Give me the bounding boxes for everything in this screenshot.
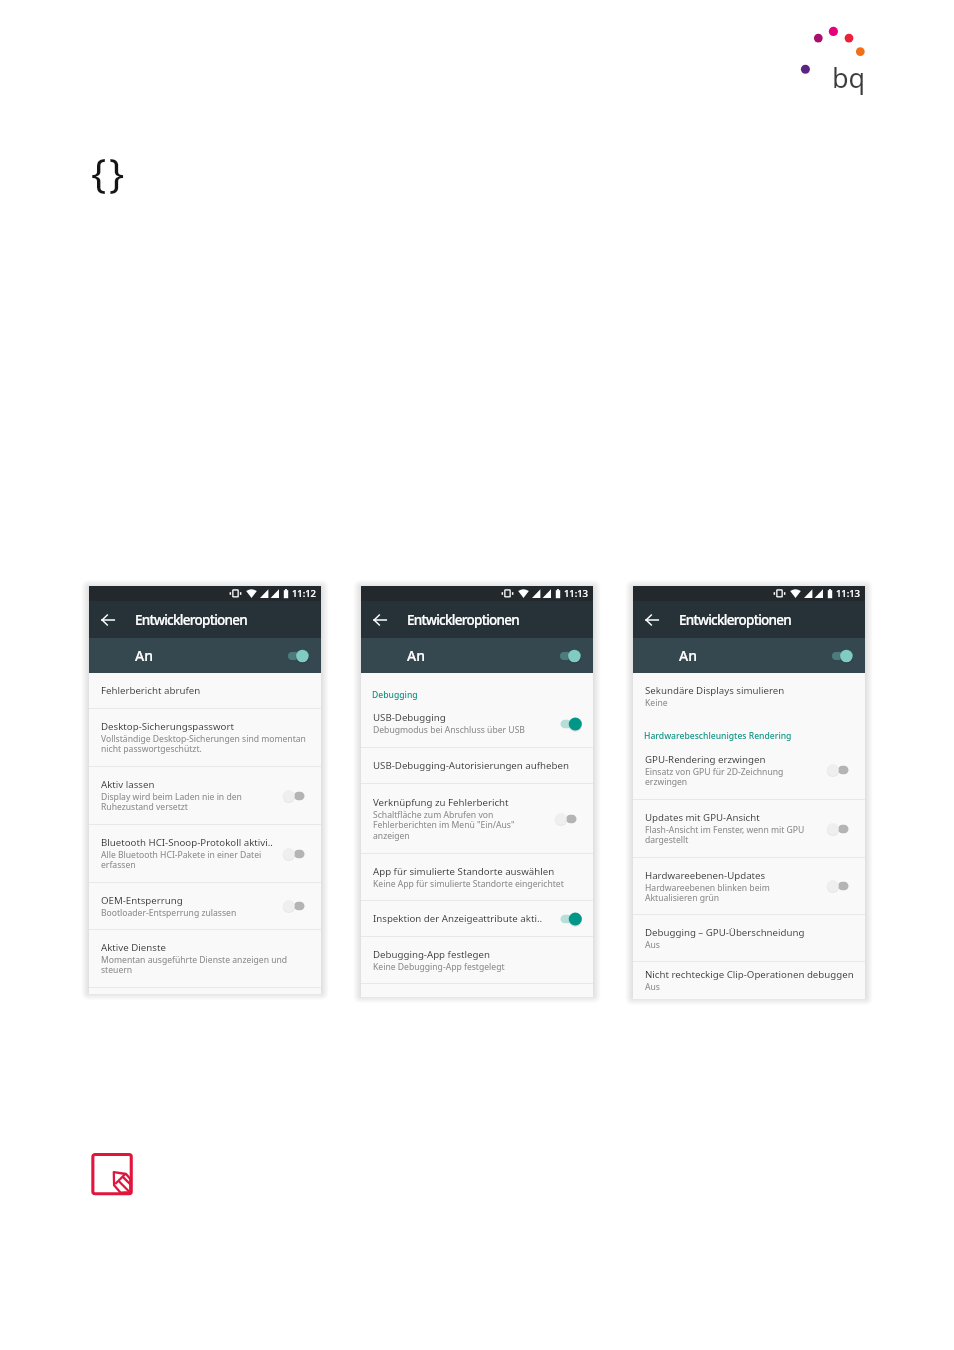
- staticText: Fehlerbericht abrufen: [101, 684, 201, 697]
- button[interactable]: Nicht rechteckige Clip-Operationen debug…: [633, 962, 865, 999]
- button[interactable]: Edit: [88, 1152, 136, 1200]
- button[interactable]: Debugging-App festlegen: [361, 937, 593, 984]
- staticText: Nicht rechteckige Clip-Operationen debug…: [645, 968, 854, 981]
- button[interactable]: Back: [633, 601, 670, 638]
- staticText: Schaltfläche zum Abrufen von Fehlerberic…: [373, 809, 551, 842]
- staticText: Hardwareebenen blinken beim Aktualisiere…: [645, 882, 823, 904]
- button[interactable]: Deaktiviert umschalten: [829, 820, 854, 838]
- button[interactable]: Back: [89, 601, 126, 638]
- staticText: Hardwarebeschleunigtes Rendering: [644, 730, 792, 742]
- button[interactable]: Aktiv lassen: [89, 767, 321, 825]
- staticText: Keine: [645, 697, 668, 709]
- staticText: }: [109, 145, 125, 199]
- button[interactable]: Back: [361, 601, 398, 638]
- button[interactable]: Deaktiviert umschalten: [285, 845, 310, 863]
- staticText: Entwickleroptionen: [407, 611, 520, 629]
- button[interactable]: USB-Debugging: [361, 700, 593, 748]
- staticText: Desktop-Sicherungspasswort: [101, 720, 234, 733]
- button[interactable]: An: [361, 638, 593, 673]
- staticText: Display wird beim Laden nie in den Ruhez…: [101, 791, 279, 813]
- staticText: Keine App für simulierte Standorte einge…: [373, 878, 564, 890]
- button[interactable]: Bluetooth HCI-Snoop-Protokoll aktivi..: [89, 825, 321, 883]
- staticText: Entwickleroptionen: [135, 611, 248, 629]
- button[interactable]: Deaktiviert umschalten: [829, 877, 854, 895]
- staticText: Bootloader-Entsperrung zulassen: [101, 907, 237, 919]
- button[interactable]: Debugging – GPU-Überschneidung: [633, 915, 865, 962]
- button[interactable]: GPU-Rendering erzwingen: [633, 741, 865, 800]
- button[interactable]: Aktiviert umschalten: [557, 910, 582, 928]
- button[interactable]: An: [89, 638, 321, 673]
- staticText: 11:13: [836, 587, 860, 600]
- button[interactable]: Inspektion der Anzeigeattribute akti..: [361, 901, 593, 937]
- staticText: Debugging: [372, 689, 418, 701]
- staticText: Bluetooth HCI-Snoop-Protokoll aktivi..: [101, 836, 273, 849]
- button[interactable]: App für simulierte Standorte auswählen: [361, 854, 593, 901]
- staticText: USB-Debugging: [373, 711, 446, 724]
- staticText: Entwickleroptionen: [679, 611, 792, 629]
- button[interactable]: Deaktiviert umschalten: [285, 787, 310, 805]
- staticText: Aktive Dienste: [101, 941, 166, 954]
- staticText: USB-Debugging-Autorisierungen aufheben: [373, 759, 569, 772]
- staticText: Aktiv lassen: [101, 778, 155, 791]
- staticText: Verknüpfung zu Fehlerbericht: [373, 796, 509, 809]
- staticText: Updates mit GPU-Ansicht: [645, 811, 760, 824]
- button[interactable]: Hardwareebenen-Updates: [633, 858, 865, 915]
- staticText: Einsatz von GPU für 2D-Zeichnung erzwing…: [645, 766, 823, 788]
- staticText: Vollständige Desktop-Sicherungen sind mo…: [101, 733, 310, 755]
- staticText: Alle Bluetooth HCI-Pakete in einer Datei…: [101, 849, 279, 871]
- staticText: An: [135, 646, 153, 665]
- button[interactable]: Verknüpfung zu Fehlerbericht: [361, 784, 593, 854]
- staticText: {: [91, 145, 107, 199]
- button[interactable]: Aktiviert umschalten: [557, 715, 582, 733]
- button[interactable]: Deaktiviert umschalten: [285, 897, 310, 915]
- staticText: Momentan ausgeführte Dienste anzeigen un…: [101, 954, 310, 976]
- staticText: OEM-Entsperrung: [101, 894, 183, 907]
- button[interactable]: Deaktiviert umschalten: [829, 761, 854, 779]
- staticText: Inspektion der Anzeigeattribute akti..: [373, 912, 543, 925]
- button[interactable]: Updates mit GPU-Ansicht: [633, 800, 865, 858]
- button[interactable]: USB-Debugging-Autorisierungen aufheben: [361, 748, 593, 784]
- staticText: App für simulierte Standorte auswählen: [373, 865, 555, 878]
- button[interactable]: Desktop-Sicherungspasswort: [89, 709, 321, 767]
- staticText: GPU-Rendering erzwingen: [645, 753, 766, 766]
- staticText: 11:12: [292, 587, 316, 600]
- staticText: Debugging-App festlegen: [373, 948, 490, 961]
- staticText: Aus: [645, 981, 660, 993]
- staticText: Hardwareebenen-Updates: [645, 869, 766, 882]
- staticText: An: [407, 646, 425, 665]
- staticText: Aus: [645, 939, 660, 951]
- staticText: Flash-Ansicht im Fenster, wenn mit GPU d…: [645, 824, 823, 846]
- button[interactable]: Sekundäre Displays simulieren: [633, 673, 865, 719]
- button[interactable]: OEM-Entsperrung: [89, 883, 321, 930]
- staticText: Keine Debugging-App festgelegt: [373, 961, 505, 973]
- button[interactable]: Fehlerbericht abrufen: [89, 673, 321, 709]
- button[interactable]: An: [633, 638, 865, 673]
- staticText: An: [679, 646, 697, 665]
- staticText: bq: [832, 59, 866, 96]
- staticText: Sekundäre Displays simulieren: [645, 684, 785, 697]
- staticText: 11:13: [564, 587, 588, 600]
- button[interactable]: Aktive Dienste: [89, 930, 321, 988]
- staticText: Debugmodus bei Anschluss über USB: [373, 724, 525, 736]
- button[interactable]: Deaktiviert umschalten: [557, 810, 582, 828]
- staticText: Debugging – GPU-Überschneidung: [645, 926, 805, 939]
